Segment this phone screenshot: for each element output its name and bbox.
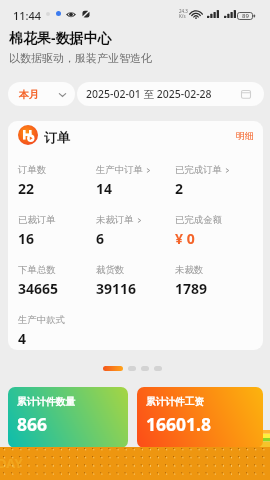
staticText: 棉花果-数据中心 <box>9 28 112 47</box>
button[interactable]: 累计计件工资 <box>137 387 263 448</box>
staticText: 39116 <box>96 279 137 298</box>
staticText: 4 <box>18 329 27 348</box>
staticText: 6 <box>96 229 105 248</box>
button[interactable]: 累计计件数量 <box>8 387 128 448</box>
staticText: 14 <box>96 179 113 198</box>
staticText: 累计计件工资 <box>146 396 205 408</box>
staticText: 订单数 <box>18 164 47 176</box>
staticText: 本月 <box>19 88 39 101</box>
staticText: K/s <box>179 13 186 19</box>
staticText: 明细 <box>236 130 254 141</box>
staticText: ¥ 0 <box>175 229 195 248</box>
staticText: 已完成订单 <box>175 164 222 176</box>
staticText: 2025-02-01 至 2025-02-28 <box>86 87 212 101</box>
button[interactable]: 2025-02-01 至 2025-02-28 <box>77 82 264 106</box>
staticText: 裁货数 <box>96 264 125 276</box>
staticText: 未裁数 <box>175 264 204 276</box>
button[interactable]: 本月 <box>8 82 75 106</box>
staticText: 累计计件数量 <box>17 396 76 408</box>
staticText: 下单总数 <box>18 264 56 276</box>
staticText: 生产中款式 <box>18 314 65 326</box>
staticText: 生产中订单 <box>96 164 143 176</box>
staticText: 16 <box>18 229 35 248</box>
button[interactable]: 明细 <box>230 125 260 145</box>
staticText: 24.3 <box>179 8 188 14</box>
staticText: 22 <box>18 179 35 198</box>
staticText: 2 <box>175 179 184 198</box>
staticText: 16601.8 <box>146 412 211 436</box>
staticText: 未裁订单 <box>96 214 134 226</box>
staticText: 以数据驱动，服装产业智造化 <box>9 51 152 65</box>
staticText: 1789 <box>175 279 208 298</box>
staticText: 866 <box>17 412 48 436</box>
staticText: DAY <box>0 454 23 472</box>
staticText: 已裁订单 <box>18 214 56 226</box>
staticText: 已完成金额 <box>175 214 222 226</box>
staticText: 订单 <box>44 129 70 145</box>
staticText: 11:44 <box>13 8 42 23</box>
other: Pick date range <box>241 89 251 99</box>
staticText: 34665 <box>18 279 59 298</box>
staticText: 89 <box>242 12 249 20</box>
